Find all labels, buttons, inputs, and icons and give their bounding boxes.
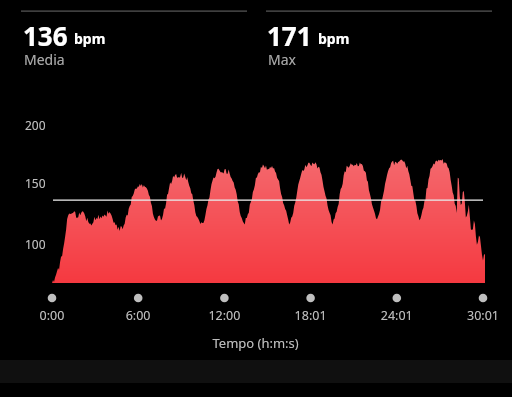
button[interactable]: Heart rate chart for workout [0,0,512,397]
